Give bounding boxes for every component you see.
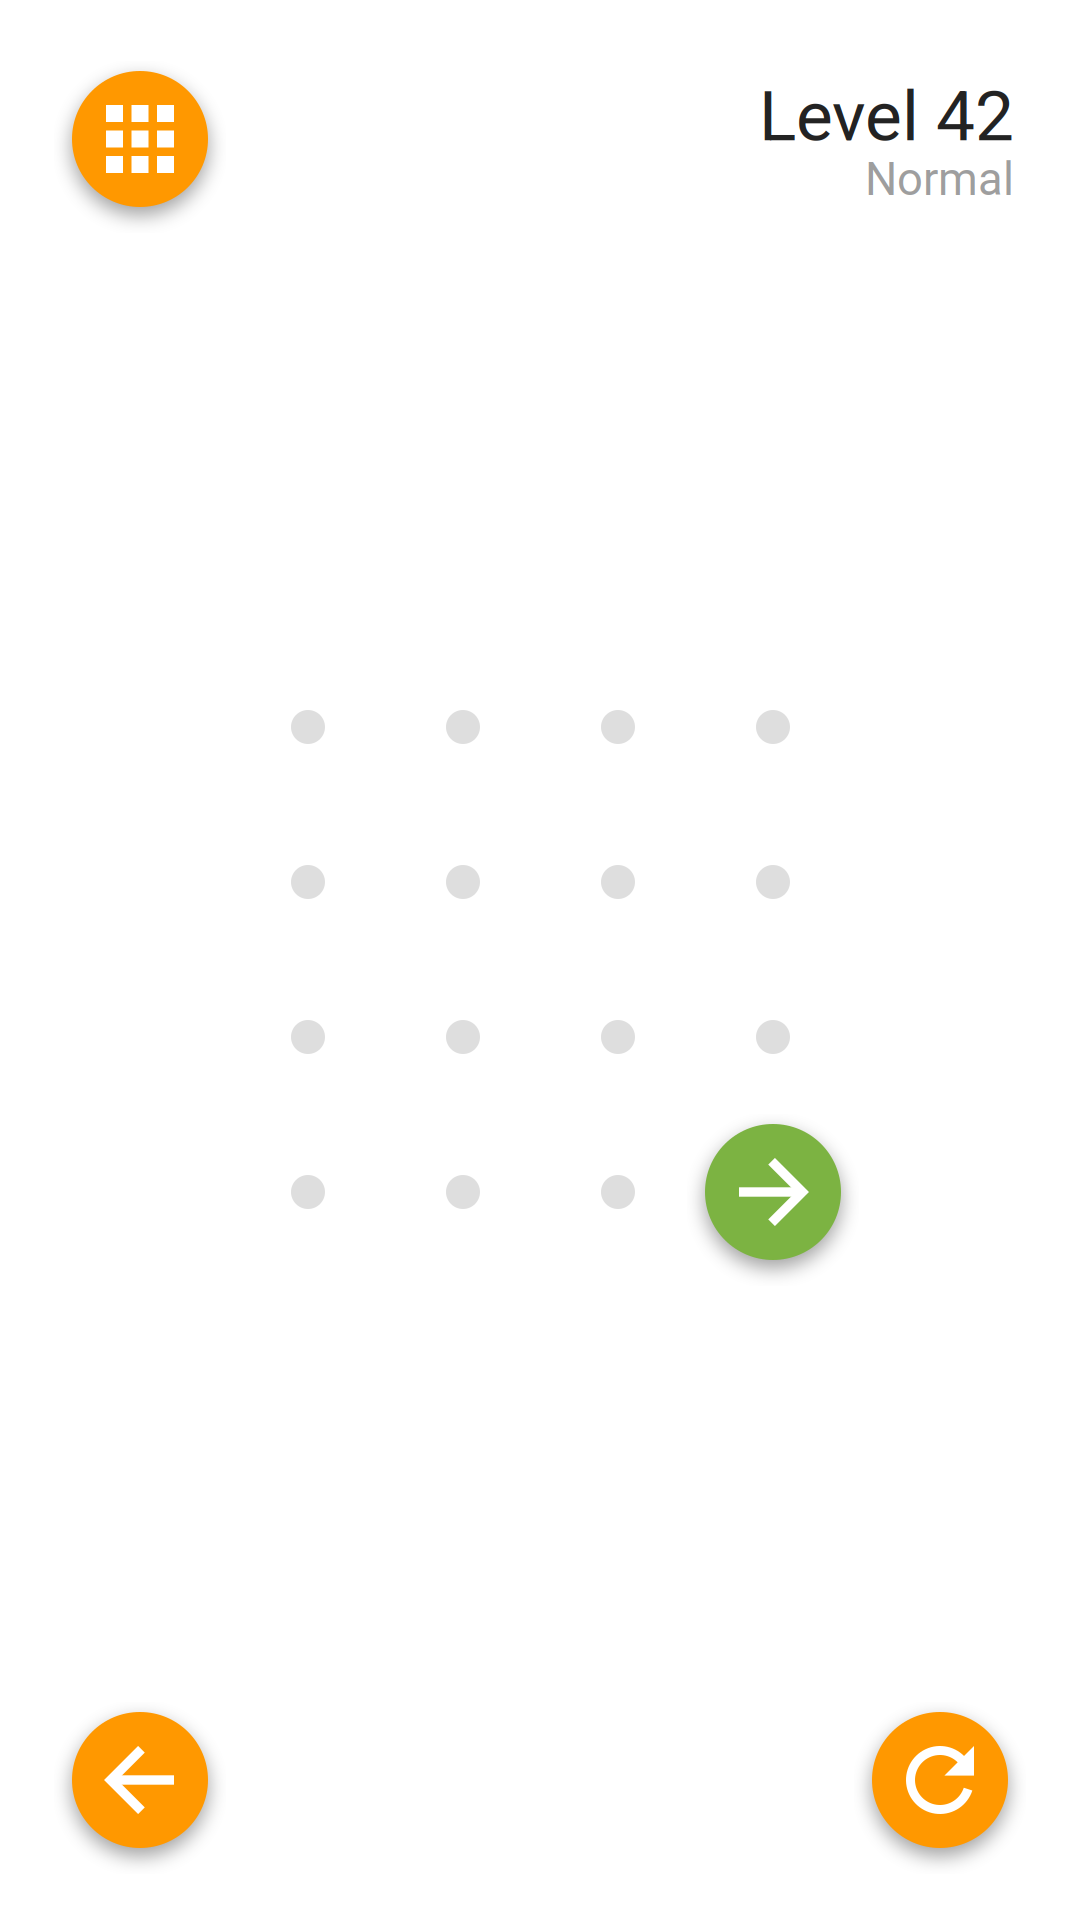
button[interactable]: Restart level	[872, 1712, 1008, 1848]
staticText: Level 42	[759, 76, 1014, 157]
staticText: Normal	[865, 153, 1014, 206]
button[interactable]: Move player right	[705, 1124, 841, 1260]
button[interactable]: Level select	[72, 71, 208, 207]
button[interactable]: Back	[72, 1712, 208, 1848]
